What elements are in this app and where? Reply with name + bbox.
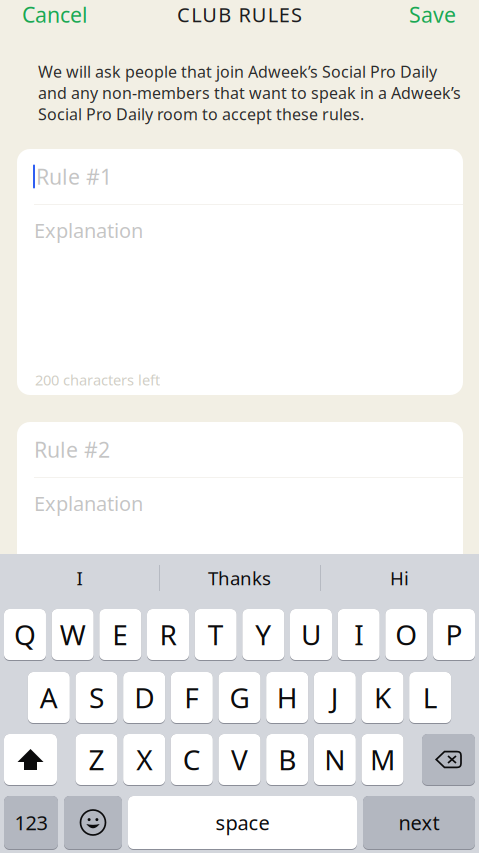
button[interactable]: P (433, 609, 475, 661)
button[interactable]: Emoji (64, 796, 122, 850)
staticText: Y (255, 616, 271, 653)
staticText: We will ask people that join Adweek’s So… (38, 61, 437, 82)
staticText: and any non-members that want to speak i… (38, 82, 461, 103)
staticText: K (374, 679, 391, 716)
button[interactable]: Explanation (17, 205, 463, 370)
staticText: Explanation (34, 490, 143, 517)
staticText: O (395, 616, 417, 653)
staticText: Q (14, 616, 36, 653)
staticText: C (183, 741, 201, 778)
staticText: W (60, 616, 86, 653)
button[interactable]: I (338, 609, 380, 661)
button[interactable]: Explanation (17, 478, 463, 668)
staticText: Rule #2 (34, 435, 110, 464)
button[interactable]: K (361, 672, 403, 724)
button[interactable]: T (195, 609, 237, 661)
button[interactable]: Cancel (0, 0, 110, 34)
staticText: next (398, 809, 439, 836)
button[interactable]: Save (386, 0, 479, 34)
staticText: V (231, 741, 248, 778)
button[interactable]: Shift (4, 734, 57, 786)
staticText: Z (88, 741, 104, 778)
button[interactable]: Q (4, 609, 46, 661)
button[interactable]: B (266, 734, 308, 786)
staticText: T (208, 616, 224, 653)
button[interactable]: Thanks (159, 555, 320, 601)
button[interactable]: Delete (422, 734, 475, 786)
button[interactable]: C (171, 734, 213, 786)
staticText: X (136, 741, 152, 778)
staticText: I (76, 566, 82, 590)
button[interactable]: L (409, 672, 451, 724)
staticText: F (184, 679, 199, 716)
staticText: D (134, 679, 154, 716)
staticText: space (215, 809, 269, 836)
button[interactable]: N (314, 734, 356, 786)
button[interactable]: M (361, 734, 403, 786)
staticText: B (278, 741, 296, 778)
staticText: E (112, 616, 128, 653)
staticText: Social Pro Daily room to accept these ru… (38, 103, 364, 125)
button[interactable]: E (99, 609, 141, 661)
button[interactable]: X (123, 734, 165, 786)
staticText: R (159, 616, 176, 653)
staticText: S (89, 679, 104, 716)
staticText: Thanks (208, 566, 271, 590)
staticText: 123 (14, 809, 47, 836)
staticText: Cancel (22, 0, 88, 29)
button[interactable]: S (75, 672, 117, 724)
button[interactable]: Hi (320, 555, 479, 601)
button[interactable]: D (123, 672, 165, 724)
button[interactable]: space (128, 796, 357, 850)
staticText: CLUB RULES (177, 1, 302, 28)
staticText: A (40, 679, 58, 716)
staticText: M (370, 741, 395, 778)
button[interactable]: O (385, 609, 427, 661)
staticText: H (277, 679, 298, 716)
staticText: I (354, 616, 363, 653)
button[interactable]: A (28, 672, 70, 724)
staticText: 200 characters left (35, 370, 160, 389)
button[interactable]: Rule #2 (17, 422, 463, 477)
staticText: P (445, 616, 462, 653)
button[interactable]: Y (242, 609, 284, 661)
button[interactable]: Rule #1 (17, 149, 463, 204)
staticText: Save (409, 0, 456, 29)
staticText: G (229, 679, 249, 716)
staticText: U (301, 616, 321, 653)
button[interactable]: H (266, 672, 308, 724)
button[interactable]: W (52, 609, 94, 661)
staticText: Rule #1 (36, 162, 112, 191)
button[interactable]: U (290, 609, 332, 661)
button[interactable]: J (314, 672, 356, 724)
staticText: J (331, 679, 339, 716)
staticText: Hi (390, 566, 409, 590)
button[interactable]: V (218, 734, 260, 786)
button[interactable]: 123 (4, 796, 58, 850)
button[interactable]: G (218, 672, 260, 724)
staticText: L (423, 679, 438, 716)
button[interactable]: I (0, 555, 159, 601)
button[interactable]: next (363, 796, 475, 850)
button[interactable]: F (171, 672, 213, 724)
staticText: Explanation (34, 217, 143, 244)
button[interactable]: R (147, 609, 189, 661)
staticText: N (324, 741, 345, 778)
button[interactable]: Z (75, 734, 117, 786)
